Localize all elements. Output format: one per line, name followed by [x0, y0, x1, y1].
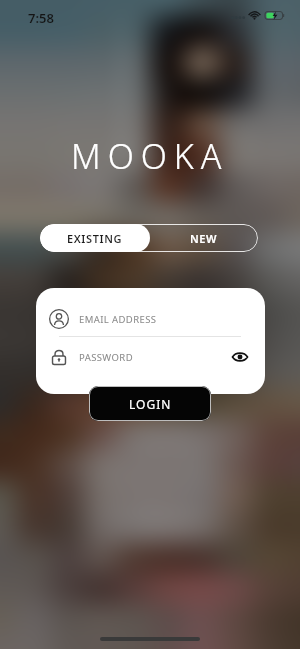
button[interactable]: EXISTING	[40, 224, 150, 252]
staticText: MOOKA	[71, 133, 229, 179]
staticText: NEW	[190, 231, 218, 246]
staticText: PASSWORD	[79, 351, 133, 364]
button[interactable]: LOGIN	[89, 386, 211, 421]
button[interactable]: NEW	[150, 224, 258, 252]
button[interactable]: EMAIL ADDRESS	[36, 302, 265, 336]
staticText: LOGIN	[129, 396, 172, 412]
button[interactable]: PASSWORD	[36, 337, 265, 377]
staticText: 7:58	[28, 9, 54, 27]
staticText: EXISTING	[67, 231, 123, 246]
button[interactable]: Show password	[227, 344, 253, 370]
staticText: EMAIL ADDRESS	[79, 313, 157, 326]
